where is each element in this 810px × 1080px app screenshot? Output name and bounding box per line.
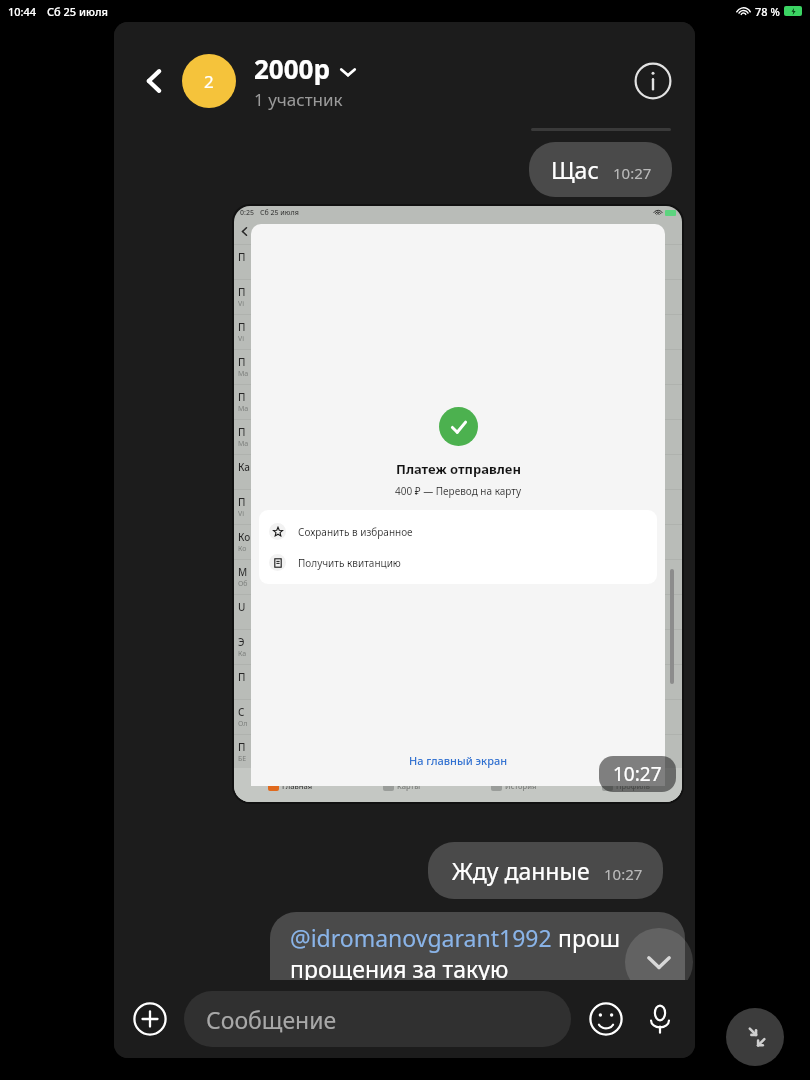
staticText: Ma bbox=[238, 439, 249, 449]
button[interactable]: Chat avatar bbox=[182, 54, 236, 108]
staticText: 10:27 bbox=[604, 864, 643, 884]
staticText: 10:44 bbox=[8, 4, 37, 19]
button[interactable]: Сохранить в избранное bbox=[259, 516, 657, 547]
staticText: М bbox=[238, 565, 248, 579]
staticText: Получить квитанцию bbox=[298, 556, 401, 570]
button[interactable]: На главный экран bbox=[251, 753, 665, 768]
button[interactable]: Payment screenshot bbox=[232, 204, 684, 804]
staticText: Сб 25 июля bbox=[260, 208, 299, 218]
staticText: Vi bbox=[238, 299, 245, 309]
staticText: Платеж отправлен bbox=[396, 460, 521, 478]
staticText: U bbox=[238, 600, 246, 614]
staticText: Ко bbox=[238, 530, 251, 544]
staticText: прощения за такую bbox=[290, 953, 509, 984]
staticText: 2 bbox=[204, 70, 214, 93]
staticText: П bbox=[238, 250, 246, 264]
staticText: История bbox=[505, 781, 537, 791]
staticText: 10:27 bbox=[613, 163, 652, 183]
button[interactable]: Профиль bbox=[570, 780, 682, 791]
staticText: прош bbox=[552, 922, 621, 953]
staticText: На главный экран bbox=[409, 753, 508, 768]
staticText: П bbox=[238, 285, 246, 299]
staticText: 0:25 bbox=[240, 208, 254, 218]
staticText: Сохранить в избранное bbox=[298, 525, 413, 539]
staticText: Ка bbox=[238, 649, 247, 659]
staticText: 2000р bbox=[254, 51, 330, 86]
staticText: БЕ bbox=[238, 754, 247, 764]
button[interactable]: Emoji bbox=[583, 996, 629, 1042]
staticText: П bbox=[238, 425, 246, 439]
button[interactable]: Back bbox=[130, 57, 178, 105]
button[interactable]: Жду данные bbox=[428, 842, 663, 899]
staticText: 1 участник bbox=[254, 88, 343, 111]
staticText: Ко bbox=[238, 544, 247, 554]
button[interactable]: Щас bbox=[529, 142, 672, 197]
staticText: Профиль bbox=[616, 781, 650, 791]
staticText: П bbox=[238, 740, 246, 754]
staticText: Жду данные bbox=[452, 855, 590, 886]
staticText: 10:27 bbox=[613, 761, 662, 787]
staticText: П bbox=[238, 355, 246, 369]
button[interactable]: Info bbox=[627, 55, 679, 107]
staticText: Сообщение bbox=[206, 1004, 337, 1035]
staticText: Главная bbox=[282, 781, 313, 791]
staticText: Ma bbox=[238, 369, 249, 379]
staticText: Об bbox=[238, 579, 248, 589]
staticText: Ma bbox=[238, 404, 249, 414]
staticText: Карты bbox=[397, 781, 421, 791]
staticText: @idromanovgarant1992 bbox=[290, 922, 552, 953]
button[interactable]: Voice message bbox=[637, 996, 683, 1042]
staticText: П bbox=[238, 390, 246, 404]
staticText: ситуацию продавец меня bbox=[290, 984, 575, 1007]
staticText: 78 % bbox=[755, 4, 780, 19]
button[interactable]: @idromanovgarant1992 bbox=[270, 912, 685, 1007]
button[interactable]: Сообщение bbox=[184, 991, 571, 1047]
button[interactable]: Attach bbox=[126, 995, 174, 1043]
button[interactable]: Scroll to bottom bbox=[625, 928, 693, 996]
button[interactable]: Получить квитанцию bbox=[259, 547, 657, 578]
staticText: Ол bbox=[238, 719, 248, 729]
button[interactable]: История bbox=[458, 780, 570, 791]
staticText: П bbox=[238, 670, 246, 684]
button[interactable]: Карты bbox=[346, 780, 458, 791]
staticText: С bbox=[238, 705, 245, 719]
staticText: Vi bbox=[238, 509, 245, 519]
staticText: Э bbox=[238, 635, 245, 649]
button[interactable]: 2000р bbox=[254, 51, 627, 111]
staticText: П bbox=[238, 320, 246, 334]
staticText: Сб 25 июля bbox=[47, 4, 108, 19]
button[interactable]: Главная bbox=[234, 780, 346, 791]
staticText: П bbox=[238, 495, 246, 509]
button[interactable]: Minimize bbox=[726, 1008, 784, 1066]
staticText: Щас bbox=[551, 154, 599, 185]
staticText: 400 ₽ — Перевод на карту bbox=[395, 484, 522, 498]
staticText: Ка bbox=[238, 460, 251, 474]
staticText: Vi bbox=[238, 334, 245, 344]
